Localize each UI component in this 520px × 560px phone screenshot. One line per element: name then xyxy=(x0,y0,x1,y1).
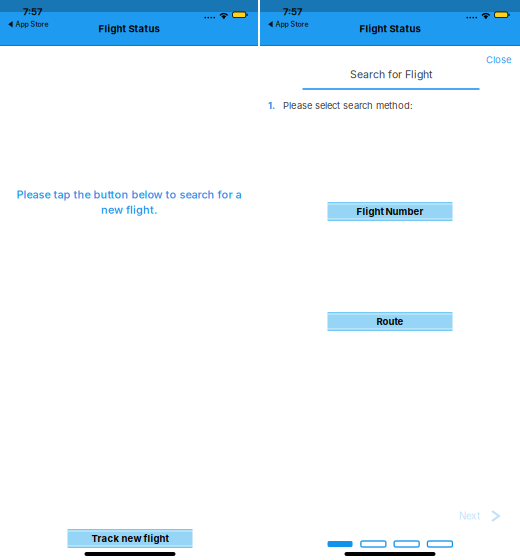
button[interactable]: Flight Number xyxy=(327,202,452,221)
staticText: Search for Flight xyxy=(350,68,432,81)
button[interactable]: App Store xyxy=(260,17,313,31)
button[interactable]: Step 2 xyxy=(361,541,386,547)
staticText: Please select search method: xyxy=(283,100,413,111)
button[interactable]: Close xyxy=(480,51,518,68)
staticText: Please tap the button below to search fo… xyxy=(16,188,241,201)
staticText: App Store xyxy=(15,20,48,28)
button[interactable]: Step 1 xyxy=(328,541,353,547)
button[interactable]: Step 3 xyxy=(394,541,419,547)
staticText: Flight Status xyxy=(359,23,420,35)
staticText: Close xyxy=(486,54,512,65)
staticText: Track new flight xyxy=(91,533,168,544)
staticText: 7:57 xyxy=(23,6,43,17)
button[interactable]: Next xyxy=(455,507,504,525)
staticText: 7:57 xyxy=(283,6,303,17)
button[interactable]: Route xyxy=(327,312,452,331)
staticText: 1. xyxy=(268,100,275,111)
staticText: new flight. xyxy=(101,203,157,216)
staticText: Route xyxy=(376,316,403,327)
staticText: Flight Number xyxy=(356,206,423,217)
button[interactable]: Track new flight xyxy=(67,529,192,548)
staticText: App Store xyxy=(275,20,308,28)
button[interactable]: Step 4 xyxy=(427,541,452,547)
staticText: Flight Status xyxy=(98,23,159,35)
staticText: Next xyxy=(459,510,480,522)
button[interactable]: App Store xyxy=(0,17,53,31)
